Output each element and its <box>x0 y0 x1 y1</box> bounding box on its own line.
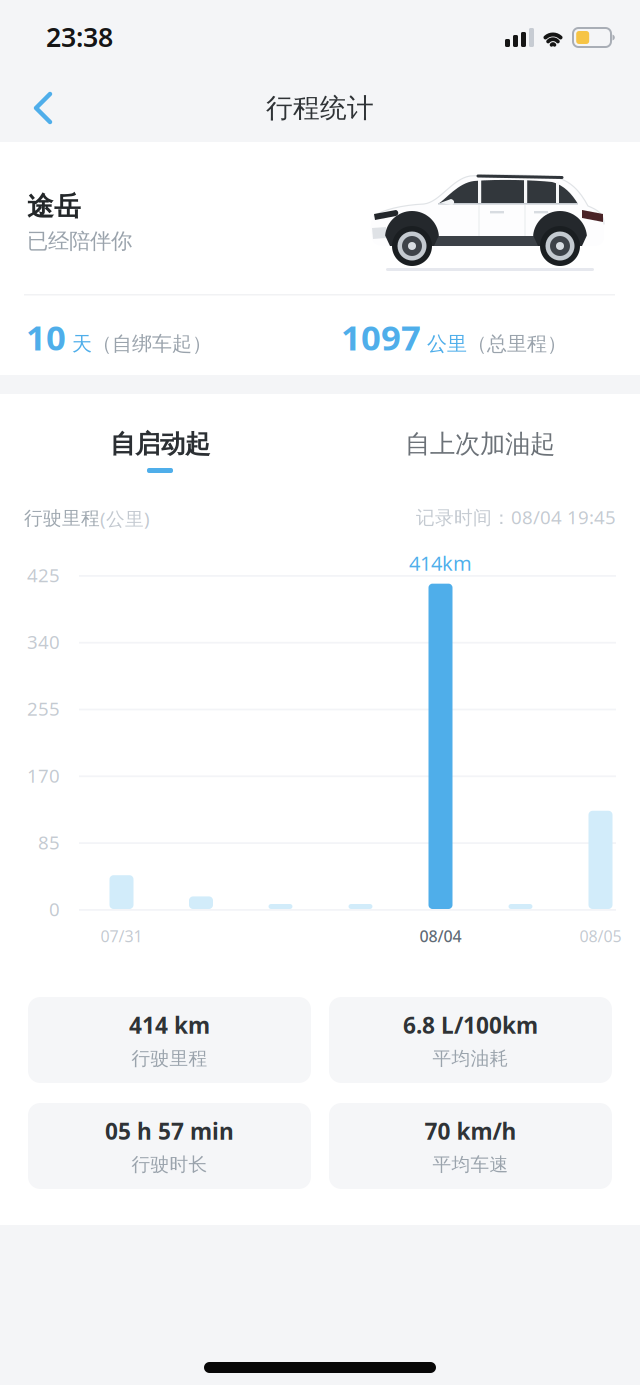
staticText: 340 <box>27 629 60 654</box>
staticText: 记录时间：08/04 19:45 <box>416 505 616 529</box>
staticText: 255 <box>27 696 60 721</box>
staticText: 公里 <box>421 331 467 356</box>
staticText: 自启动起 <box>110 428 210 459</box>
staticText: 23:38 <box>46 19 113 54</box>
staticText: （总里程） <box>467 331 567 356</box>
button[interactable]: 414 km <box>28 997 311 1083</box>
staticText: 170 <box>27 763 60 788</box>
staticText: 途岳 <box>27 190 81 223</box>
button[interactable]: 自启动起 <box>0 418 320 486</box>
staticText: （自绑车起） <box>92 331 212 356</box>
staticText: 1097 <box>341 314 421 360</box>
staticText: 天 <box>66 331 92 356</box>
staticText: (公里) <box>100 506 150 531</box>
staticText: 行驶里程 <box>131 1047 207 1070</box>
staticText: 平均车速 <box>432 1153 508 1176</box>
button[interactable]: Back <box>24 82 80 134</box>
staticText: 414km <box>409 550 472 576</box>
button[interactable]: 70 km/h <box>329 1103 612 1189</box>
staticText: 自上次加油起 <box>405 428 555 459</box>
staticText: 07/31 <box>100 925 142 947</box>
staticText: 08/05 <box>579 925 621 947</box>
staticText: 行驶时长 <box>131 1153 207 1176</box>
button[interactable]: 6.8 L/100km <box>329 997 612 1083</box>
button[interactable]: 05 h 57 min <box>28 1103 311 1189</box>
staticText: 行程统计 <box>266 92 374 124</box>
button[interactable]: 自上次加油起 <box>320 418 640 486</box>
staticText: 08/04 <box>419 925 461 947</box>
staticText: 6.8 L/100km <box>403 1010 538 1040</box>
staticText: 70 km/h <box>424 1116 516 1146</box>
staticText: 414 km <box>129 1010 210 1040</box>
staticText: 已经陪伴你 <box>27 228 132 254</box>
staticText: 0 <box>49 897 60 921</box>
staticText: 平均油耗 <box>432 1047 508 1070</box>
staticText: 05 h 57 min <box>105 1116 234 1146</box>
staticText: 行驶里程 <box>24 507 100 530</box>
staticText: 85 <box>38 830 60 855</box>
staticText: 10 <box>26 314 66 360</box>
staticText: 425 <box>27 563 60 587</box>
